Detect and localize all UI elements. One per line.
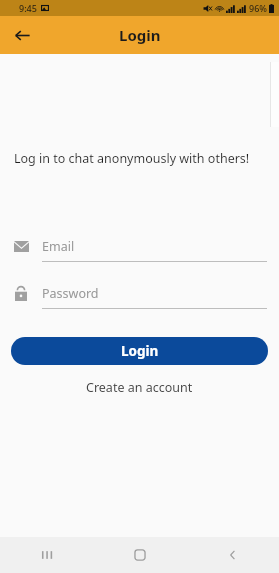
button[interactable]: Back xyxy=(8,21,36,49)
staticText: Login xyxy=(119,25,161,45)
staticText: 96% xyxy=(249,2,267,14)
button[interactable]: Recent apps xyxy=(0,537,93,573)
button[interactable]: Email xyxy=(0,235,279,262)
staticText: 9:45 xyxy=(19,2,37,14)
button[interactable]: Login xyxy=(11,337,268,365)
staticText: Log in to chat anonymously with others! xyxy=(14,150,250,167)
button[interactable]: Create an account xyxy=(0,375,279,400)
staticText: Login xyxy=(121,342,159,360)
staticText: Create an account xyxy=(86,379,193,396)
staticText: Password xyxy=(42,285,99,302)
button[interactable]: Back xyxy=(186,537,279,573)
button[interactable]: Password xyxy=(0,282,279,309)
staticText: Email xyxy=(42,238,75,255)
button[interactable]: Home xyxy=(93,537,186,573)
